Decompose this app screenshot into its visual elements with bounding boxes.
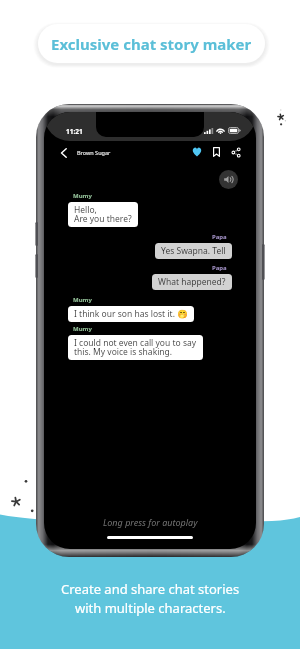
button[interactable]: Exclusive chat story maker: [38, 24, 265, 63]
button[interactable]: Hello, Are you there?: [68, 202, 138, 227]
staticText: Papa: [212, 233, 227, 241]
staticText: What happened?: [158, 276, 226, 288]
staticText: Hello, Are you there?: [74, 204, 132, 225]
button[interactable]: Yes Swapna. Tell: [155, 243, 232, 259]
button[interactable]: Bookmark: [207, 143, 225, 161]
button[interactable]: Mute audio: [219, 170, 238, 189]
staticText: I think our son has lost it. 🤭: [74, 308, 188, 320]
button[interactable]: Share: [227, 143, 245, 161]
staticText: 11:21: [66, 127, 83, 136]
staticText: Create and share chat stories: [61, 580, 240, 598]
staticText: Mumy: [73, 296, 92, 304]
staticText: Mumy: [73, 325, 92, 333]
staticText: I could not even call you to say this. M…: [74, 337, 197, 358]
staticText: Papa: [212, 264, 227, 272]
staticText: Long press for autoplay: [103, 516, 198, 528]
staticText: Mumy: [73, 192, 92, 200]
staticText: Exclusive chat story maker: [51, 34, 252, 54]
staticText: with multiple characters.: [75, 599, 226, 617]
button[interactable]: What happened?: [152, 274, 232, 290]
staticText: Brown Sugar: [77, 149, 111, 156]
button[interactable]: I could not even call you to say this. M…: [68, 335, 203, 360]
staticText: Yes Swapna. Tell: [161, 245, 226, 257]
button[interactable]: Like: [188, 143, 206, 161]
button[interactable]: I think our son has lost it. 🤭: [68, 306, 194, 322]
button[interactable]: Back: [56, 145, 72, 161]
